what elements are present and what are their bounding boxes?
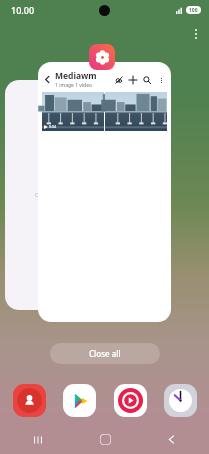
button[interactable]: Clock: [162, 382, 198, 418]
button[interactable]: Play Store: [61, 382, 97, 418]
staticText: 10.00: [11, 4, 35, 16]
staticText: Mediawm: [55, 70, 97, 82]
button[interactable]: Gallery: [89, 44, 115, 70]
button[interactable]: YouTube Music: [112, 382, 148, 418]
button[interactable]: 0:04: [42, 92, 104, 131]
button[interactable]: Back: [41, 73, 54, 86]
button[interactable]: Recents: [16, 425, 60, 454]
button[interactable]: [105, 92, 167, 131]
button[interactable]: More options: [188, 24, 204, 44]
button[interactable]: Back: [38, 62, 171, 322]
staticText: 100: [189, 7, 198, 14]
staticText: 0:04: [49, 124, 56, 129]
button[interactable]: Contacts: [11, 382, 47, 418]
staticText: 1 image 1 video: [55, 82, 93, 89]
staticText: Citroe: [35, 192, 50, 199]
button[interactable]: Add: [127, 74, 139, 86]
button[interactable]: Search: [141, 74, 153, 86]
button[interactable]: Back: [149, 425, 193, 454]
button[interactable]: More options: [155, 74, 167, 86]
button[interactable]: Close all: [50, 343, 160, 364]
button[interactable]: Cloud sync off: [113, 74, 125, 86]
staticText: Close all: [89, 348, 121, 359]
button[interactable]: Citroe: [5, 80, 79, 310]
button[interactable]: Home: [83, 425, 127, 454]
